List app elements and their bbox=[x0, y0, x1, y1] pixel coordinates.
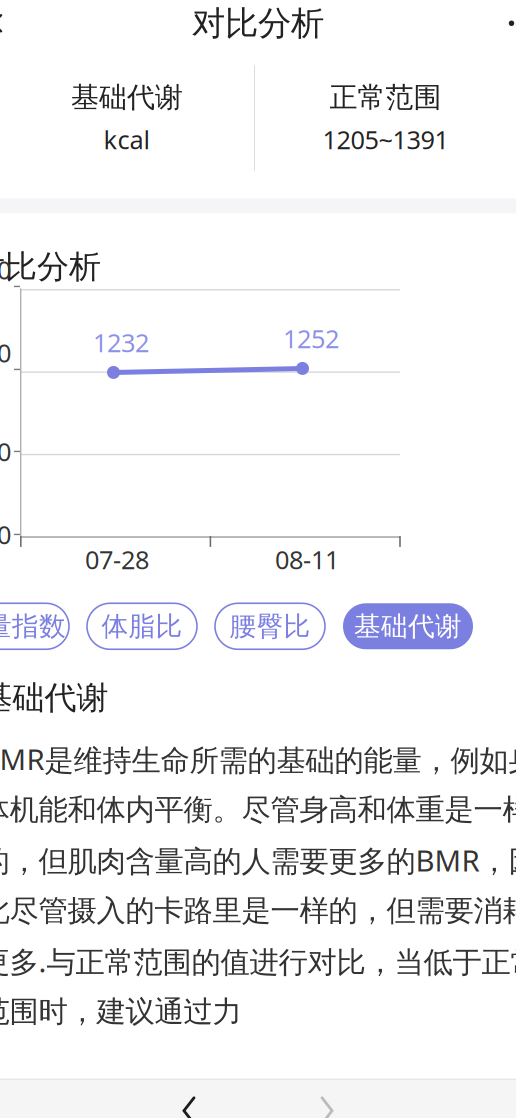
button[interactable]: 腰臀比 bbox=[215, 603, 325, 649]
button[interactable]: 基础代谢 bbox=[343, 603, 473, 649]
staticText: 08-11 bbox=[275, 543, 339, 576]
button[interactable]: 下一项 bbox=[290, 1080, 364, 1118]
staticText: 1,500 bbox=[0, 253, 11, 320]
button[interactable]: 身体质量指数 bbox=[0, 603, 69, 649]
staticText: 1205~1391 bbox=[322, 123, 448, 156]
staticText: 1252 bbox=[283, 322, 339, 355]
staticText: 对比分析 bbox=[192, 3, 324, 44]
staticText: 腰臀比 bbox=[229, 610, 310, 643]
button[interactable]: 上一项 bbox=[152, 1080, 226, 1118]
button[interactable]: 体脂比 bbox=[87, 603, 197, 649]
staticText: 0 bbox=[0, 518, 11, 551]
staticText: 正常范围 bbox=[329, 80, 441, 115]
staticText: 基础代谢 bbox=[354, 610, 462, 643]
button[interactable]: 关闭 bbox=[0, 0, 23, 53]
staticText: 基础代谢 bbox=[71, 80, 183, 115]
staticText: 身体质量指数 bbox=[0, 610, 66, 643]
staticText: 基础代谢 bbox=[0, 678, 108, 718]
staticText: 07-28 bbox=[85, 543, 149, 576]
staticText: kcal bbox=[103, 123, 150, 156]
staticText: 对比分析 bbox=[0, 247, 101, 286]
staticText: 体脂比 bbox=[101, 610, 182, 643]
staticText: 500 bbox=[0, 435, 11, 468]
staticText: 1232 bbox=[93, 326, 149, 359]
staticText: BMR是维持生命所需的基础的能量，例如身体机能和体内平衡。尽管身高和体重是一样的… bbox=[0, 740, 516, 1030]
staticText: 1,000 bbox=[0, 336, 11, 403]
button[interactable]: 更多 bbox=[493, 0, 516, 53]
